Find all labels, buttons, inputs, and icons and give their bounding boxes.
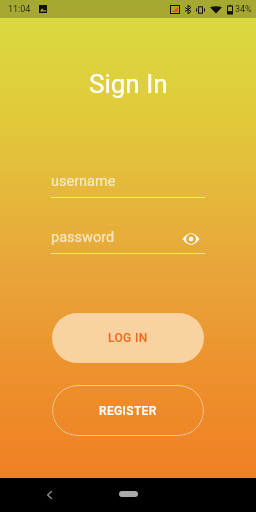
button[interactable]: REGISTER	[52, 385, 204, 436]
staticText: LOG IN	[108, 331, 148, 345]
staticText: Sign In	[89, 69, 168, 99]
button[interactable]: Back	[38, 483, 62, 507]
button[interactable]: Show password	[181, 229, 201, 249]
button[interactable]: LOG IN	[52, 313, 204, 363]
button[interactable]: username	[51, 169, 205, 201]
button[interactable]: password	[51, 225, 205, 257]
staticText: password	[51, 229, 115, 246]
button[interactable]: Home	[119, 491, 138, 497]
staticText: username	[51, 173, 116, 190]
staticText: 34%	[235, 4, 252, 15]
staticText: REGISTER	[99, 404, 157, 418]
staticText: 11:04	[8, 4, 31, 15]
